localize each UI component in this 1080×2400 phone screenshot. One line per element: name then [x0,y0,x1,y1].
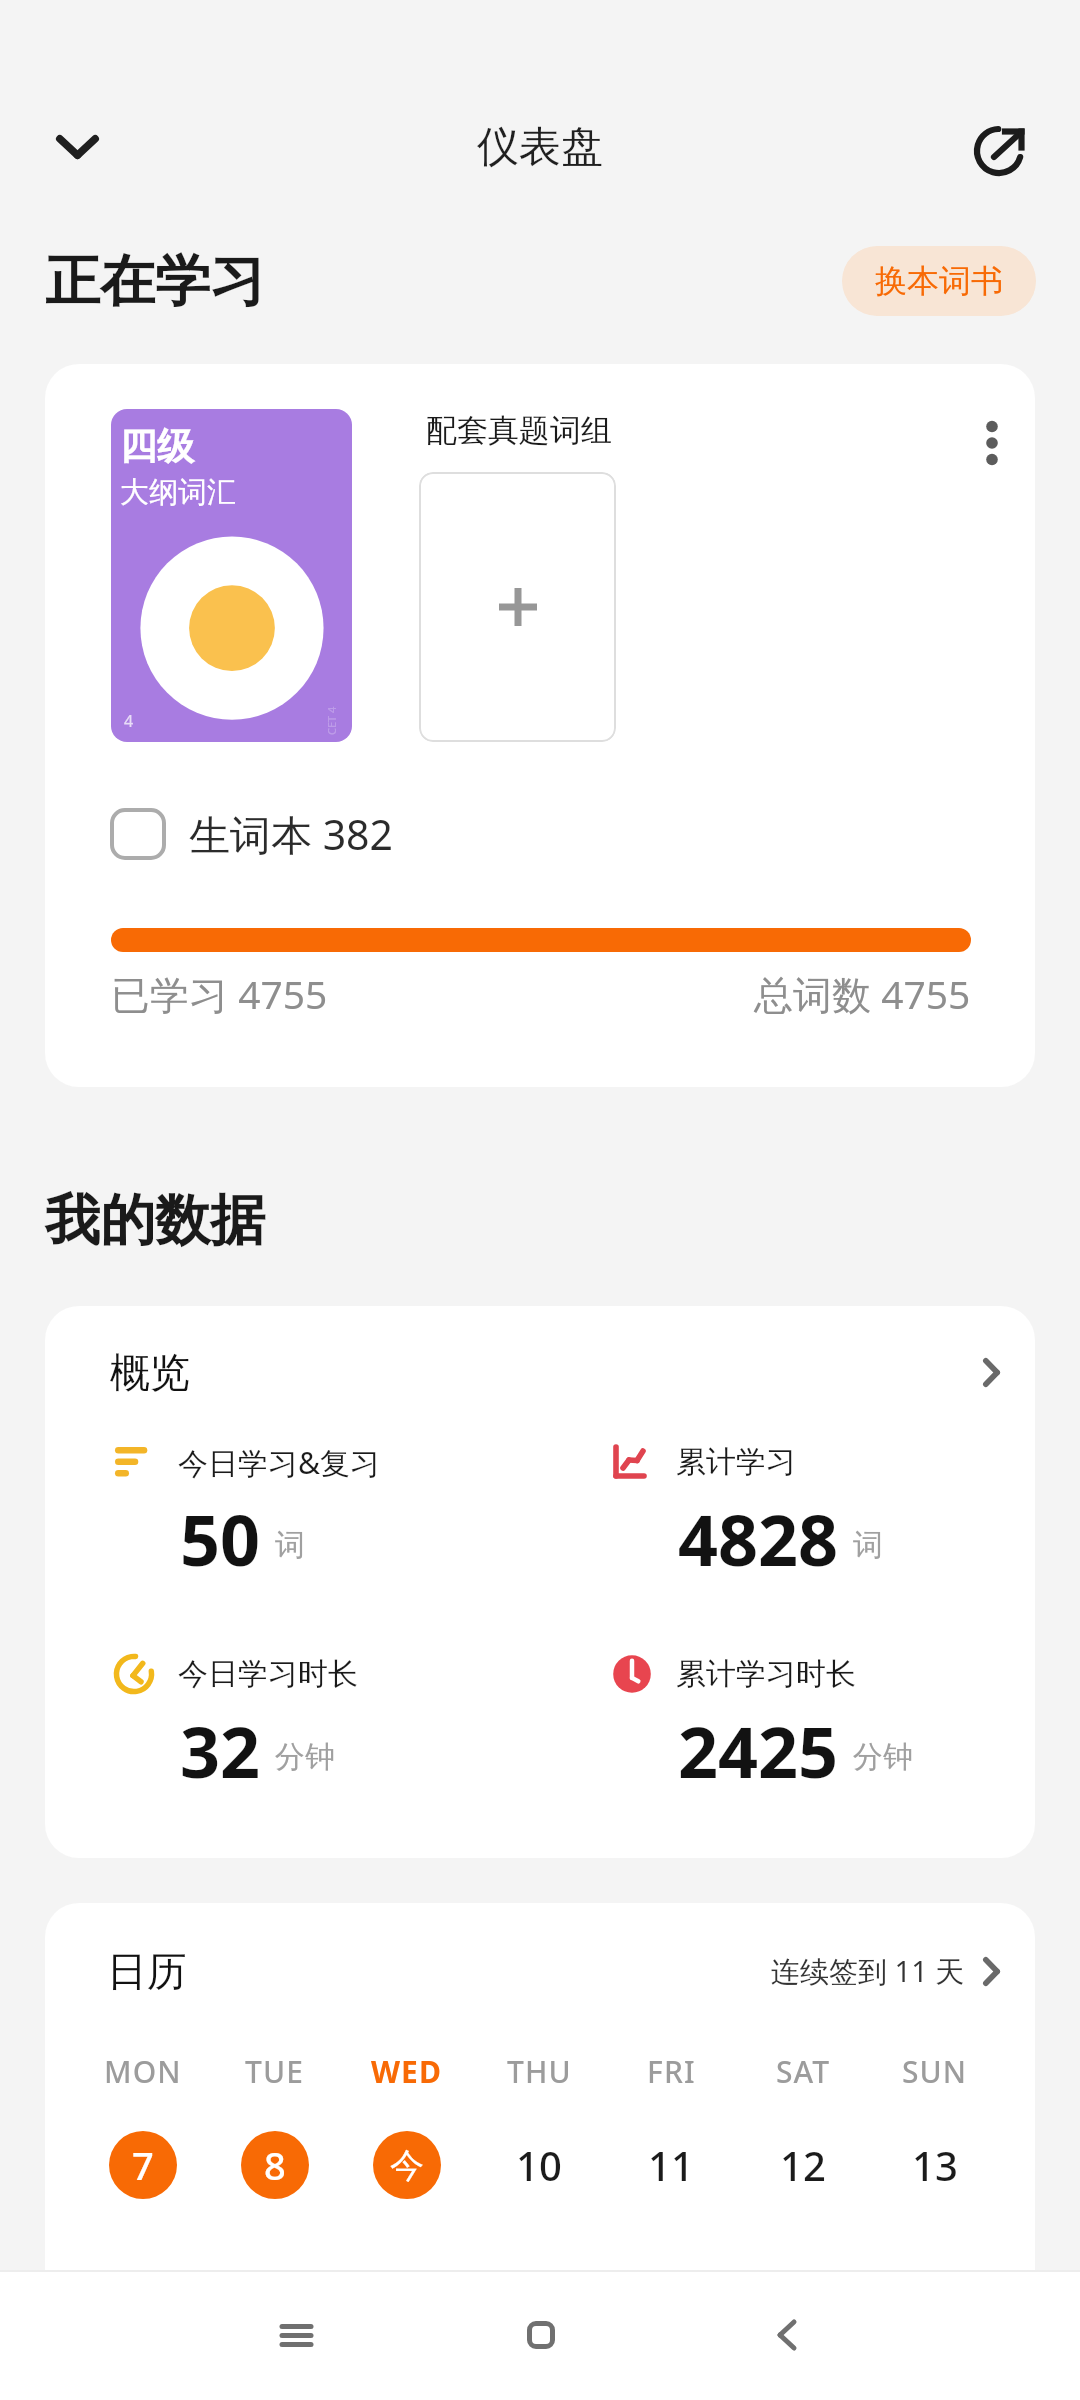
button[interactable]: Back [737,2285,837,2385]
staticText: 生词本 382 [189,806,394,862]
button[interactable]: Share [956,102,1046,192]
staticText: 今日学习时长 [178,1655,358,1693]
staticText: 32 [180,1703,261,1798]
staticText: 今 [390,2144,424,2187]
button[interactable]: Recents [246,2285,346,2385]
button[interactable]: 累计学习时长 [611,1653,1035,1798]
staticText: 我的数据 [45,1186,265,1255]
staticText: 2425 [678,1703,839,1798]
staticText: 分钟 [853,1738,913,1776]
staticText: 4 [124,710,134,732]
staticText: 正在学习 [45,247,265,316]
button[interactable]: 累计学习 [611,1441,1035,1586]
staticText: 13 [912,2138,958,2192]
button[interactable]: More options [957,408,1027,478]
staticText: 配套真题词组 [426,411,612,450]
staticText: TUE [245,2051,305,2092]
button[interactable]: 8 [241,2131,309,2199]
staticText: 10 [516,2138,562,2192]
button[interactable]: 11 [637,2131,705,2199]
staticText: 词 [275,1526,305,1564]
button[interactable]: 10 [505,2131,573,2199]
staticText: 已学习 4755 [111,967,328,1020]
staticText: 日历 [107,1946,187,1996]
staticText: 概览 [110,1347,190,1397]
button[interactable]: 12 [769,2131,837,2199]
button[interactable]: 生词本 382 [104,800,400,868]
staticText: 8 [264,2139,286,2191]
button[interactable]: Home [491,2285,591,2385]
staticText: 累计学习时长 [676,1655,856,1693]
staticText: 12 [780,2138,826,2192]
staticText: 仪表盘 [477,121,603,174]
staticText: WED [371,2051,443,2092]
button[interactable]: 今 [373,2131,441,2199]
button[interactable]: 今日学习&复习 [113,1441,611,1586]
staticText: 累计学习 [676,1443,796,1481]
staticText: 总词数 4755 [754,967,971,1020]
staticText: SUN [902,2051,968,2092]
staticText: 4828 [678,1491,839,1586]
staticText: 四级 [120,423,194,470]
staticText: 50 [180,1491,261,1586]
button[interactable]: 概览 [45,1306,1035,1438]
staticText: 词 [853,1526,883,1564]
staticText: CET 4 [324,706,339,735]
staticText: 连续签到 11 天 [771,1951,965,1991]
button[interactable]: Add word book [419,472,616,742]
button[interactable]: 四级 [111,409,352,742]
staticText: 今日学习&复习 [178,1442,380,1483]
staticText: 7 [132,2139,154,2191]
button[interactable]: 13 [901,2131,969,2199]
staticText: MON [104,2051,182,2092]
staticText: SAT [776,2051,831,2092]
staticText: 换本词书 [875,261,1003,301]
staticText: 11 [648,2138,694,2192]
button[interactable]: 7 [109,2131,177,2199]
staticText: 分钟 [275,1738,335,1776]
staticText: THU [507,2051,572,2092]
button[interactable]: 日历 [45,1903,1035,2039]
staticText: 大纲词汇 [120,474,236,511]
button[interactable]: 今日学习时长 [113,1653,611,1798]
button[interactable]: 换本词书 [842,246,1036,316]
button[interactable]: 四级 [45,364,1035,1087]
staticText: FRI [647,2051,696,2092]
button[interactable]: Collapse [32,102,122,192]
